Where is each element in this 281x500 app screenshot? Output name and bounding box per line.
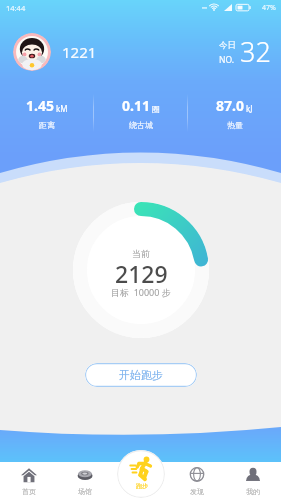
staticText: 首页	[22, 487, 36, 496]
staticText: 发现	[190, 487, 204, 496]
staticText: 距离	[39, 120, 55, 130]
staticText: 1221	[62, 42, 97, 62]
staticText: 1.45	[26, 96, 54, 115]
staticText: 热量	[227, 120, 243, 130]
staticText: 我的	[246, 487, 260, 496]
button[interactable]: 跑步	[117, 450, 165, 498]
button[interactable]: Profile	[13, 33, 51, 71]
staticText: NO.	[219, 54, 235, 66]
staticText: 当前	[132, 248, 150, 259]
staticText: 目标 10000 步	[111, 286, 171, 298]
button[interactable]: 我的	[225, 462, 281, 500]
button[interactable]: 开始跑步	[85, 363, 197, 387]
staticText: 今日	[219, 40, 236, 51]
staticText: 0.11	[122, 96, 150, 115]
staticText: 跑步	[136, 482, 148, 490]
staticText: kM	[56, 103, 68, 114]
staticText: 14:44	[6, 3, 26, 13]
staticText: kJ	[246, 103, 253, 114]
button[interactable]: 首页	[0, 462, 57, 500]
staticText: 开始跑步	[119, 368, 163, 382]
staticText: 87.0	[216, 96, 244, 115]
button[interactable]: 发现	[169, 462, 225, 500]
button[interactable]: 场馆	[57, 462, 113, 500]
staticText: 绕古城	[129, 120, 153, 130]
staticText: 47%	[262, 3, 276, 13]
staticText: 2129	[115, 258, 168, 289]
staticText: 32	[240, 33, 271, 70]
staticText: 圈	[152, 104, 160, 114]
staticText: 场馆	[78, 487, 92, 496]
